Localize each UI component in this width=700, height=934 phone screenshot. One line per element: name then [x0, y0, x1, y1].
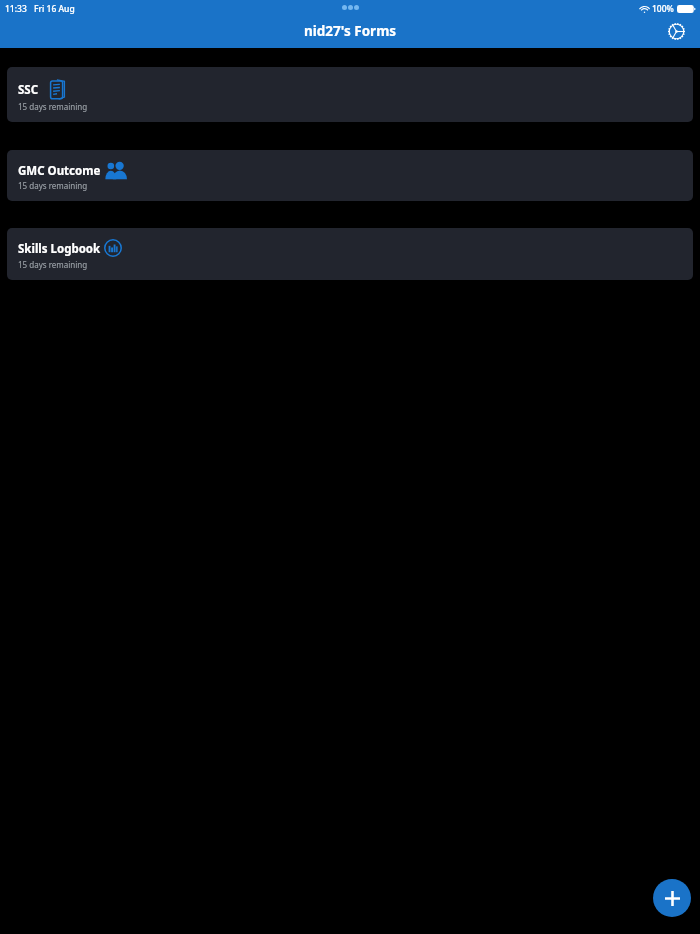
- button[interactable]: GMC Outcome: [7, 150, 693, 201]
- staticText: 11:33: [5, 3, 27, 15]
- staticText: Fri 16 Aug: [34, 3, 75, 15]
- staticText: GMC Outcome: [18, 163, 101, 179]
- staticText: 100%: [652, 3, 674, 15]
- staticText: 15 days remaining: [18, 101, 88, 112]
- staticText: 15 days remaining: [18, 259, 88, 270]
- button[interactable]: SSC: [7, 67, 693, 122]
- button[interactable]: Add: [653, 879, 691, 917]
- staticText: nid27's Forms: [304, 22, 397, 40]
- staticText: 15 days remaining: [18, 180, 88, 191]
- button[interactable]: Settings: [665, 20, 687, 42]
- staticText: Skills Logbook: [18, 241, 101, 257]
- button[interactable]: Skills Logbook: [7, 228, 693, 280]
- staticText: SSC: [18, 82, 39, 98]
